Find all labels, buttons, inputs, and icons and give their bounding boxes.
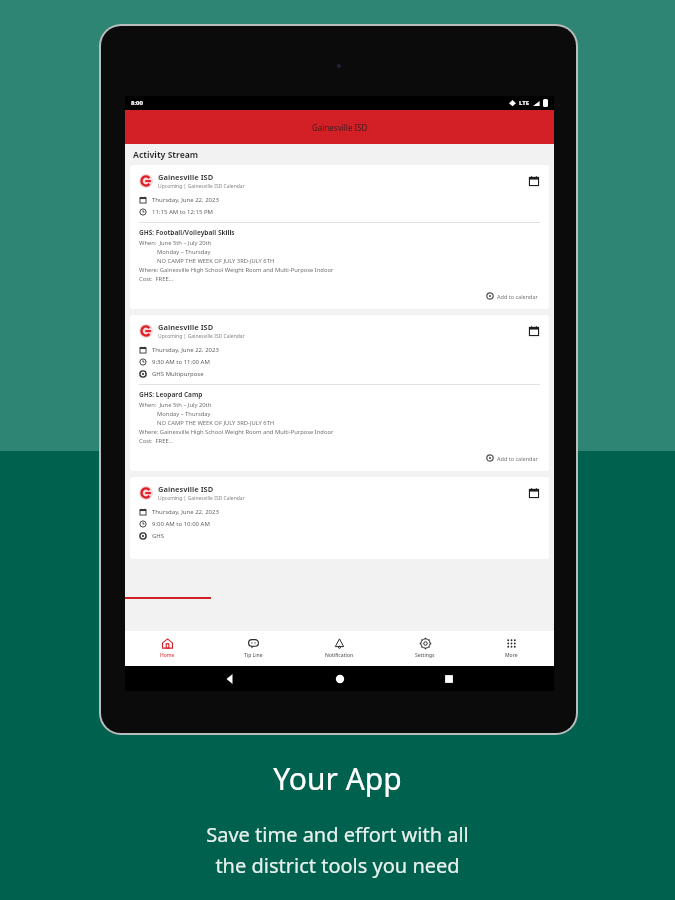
staticText: Where: Gainesville High School Weight Ro… xyxy=(139,266,334,274)
staticText: Gainesville ISD xyxy=(312,122,368,133)
staticText: Gainesville ISD xyxy=(158,484,214,494)
staticText: LTE xyxy=(519,99,530,107)
button[interactable]: More xyxy=(468,631,554,666)
staticText: GHS: Football/Volleyball Skills xyxy=(139,228,235,237)
staticText: Settings xyxy=(415,652,435,659)
staticText: When: June 5th – July 20th xyxy=(139,401,212,409)
staticText: Gainesville ISD xyxy=(158,172,214,182)
button[interactable]: Gainesville ISD xyxy=(130,315,549,471)
staticText: Cost: FREE... xyxy=(139,437,174,445)
staticText: 9:00 AM to 10:00 AM xyxy=(152,520,210,528)
staticText: Monday – Thursday xyxy=(139,410,211,418)
staticText: Where: Gainesville High School Weight Ro… xyxy=(139,428,334,436)
staticText: When: June 5th – July 20th xyxy=(139,239,212,247)
staticText: Home xyxy=(160,652,175,659)
staticText: GHS xyxy=(152,532,165,540)
button[interactable]: Calendar xyxy=(528,487,540,499)
staticText: More xyxy=(505,652,518,659)
staticText: Upcoming | Gainesville ISD Calendar xyxy=(158,183,245,190)
staticText: GHS: Leopard Camp xyxy=(139,390,203,399)
staticText: 9:30 AM to 11:00 AM xyxy=(152,358,210,366)
button[interactable]: Home xyxy=(125,631,210,666)
staticText: Add to calendar xyxy=(497,455,538,462)
staticText: 11:15 AM to 12:15 PM xyxy=(152,208,214,216)
button[interactable]: Gainesville ISD xyxy=(130,165,549,309)
staticText: Your App xyxy=(273,758,402,799)
staticText: Thursday, June 22, 2023 xyxy=(152,196,219,204)
button[interactable]: Calendar xyxy=(528,325,540,337)
staticText: Notification xyxy=(325,652,354,659)
staticText: Upcoming | Gainesville ISD Calendar xyxy=(158,333,245,340)
staticText: NO CAMP THE WEEK OF JULY 3RD-JULY 6TH xyxy=(139,419,275,427)
button[interactable]: Notification xyxy=(296,631,382,666)
staticText: Save time and effort with all xyxy=(206,821,469,848)
staticText: Add to calendar xyxy=(497,293,538,300)
button[interactable]: Add to calendar xyxy=(484,290,540,302)
button[interactable]: Settings xyxy=(382,631,468,666)
staticText: Upcoming | Gainesville ISD Calendar xyxy=(158,495,245,502)
button[interactable]: Gainesville ISD xyxy=(130,477,549,559)
staticText: Gainesville ISD xyxy=(158,322,214,332)
button[interactable]: Gainesville ISD xyxy=(125,110,554,144)
button[interactable]: Calendar xyxy=(528,175,540,187)
staticText: Tip Line xyxy=(244,652,263,659)
staticText: Cost: FREE... xyxy=(139,275,174,283)
staticText: 8:00 xyxy=(131,99,143,107)
staticText: NO CAMP THE WEEK OF JULY 3RD-JULY 6TH xyxy=(139,257,275,265)
other: Recents xyxy=(444,674,454,684)
staticText: Activity Stream xyxy=(133,149,199,161)
staticText: Monday – Thursday xyxy=(139,248,211,256)
staticText: Thursday, June 22, 2023 xyxy=(152,346,219,354)
other: Back xyxy=(225,674,235,684)
button[interactable]: Tip Line xyxy=(210,631,296,666)
staticText: GHS Multipurpose xyxy=(152,370,204,378)
other: Home xyxy=(335,674,345,684)
staticText: the district tools you need xyxy=(215,852,460,879)
button[interactable]: Add to calendar xyxy=(484,452,540,464)
staticText: Thursday, June 22, 2023 xyxy=(152,508,219,516)
